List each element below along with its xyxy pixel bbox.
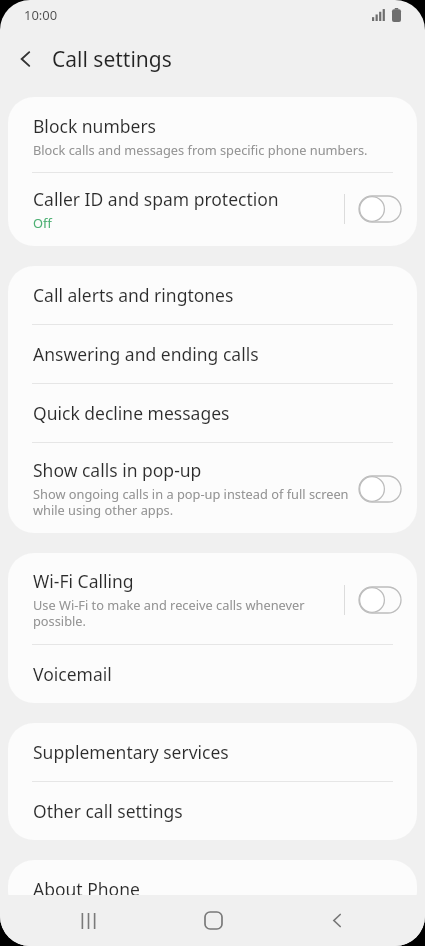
button[interactable]: Call alerts and ringtones — [8, 266, 417, 324]
button[interactable]: Answering and ending calls — [8, 325, 417, 383]
staticText: Caller ID and spam protection — [33, 187, 279, 211]
button[interactable]: Block numbers — [8, 97, 417, 172]
staticText: Block calls and messages from specific p… — [33, 141, 368, 158]
staticText: Call settings — [52, 45, 172, 74]
staticText: Wi-Fi Calling — [33, 569, 134, 593]
button[interactable]: Wi-Fi Calling — [8, 553, 417, 644]
button[interactable]: Back — [301, 895, 373, 946]
button[interactable]: About Phone — [8, 860, 417, 918]
staticText: Off — [33, 214, 52, 231]
button[interactable]: Caller ID and spam protection — [8, 173, 417, 246]
staticText: Voicemail — [33, 662, 112, 686]
button[interactable]: Home — [177, 895, 249, 946]
button[interactable]: Recent apps — [52, 895, 124, 946]
button[interactable]: Voicemail — [8, 645, 417, 703]
staticText: Quick decline messages — [33, 401, 230, 425]
staticText: Supplementary services — [33, 740, 229, 764]
button[interactable]: Supplementary services — [8, 723, 417, 781]
staticText: Block numbers — [33, 114, 157, 138]
button[interactable]: Show calls in pop-up — [8, 443, 417, 533]
staticText: Call alerts and ringtones — [33, 283, 234, 307]
staticText: Show calls in pop-up — [33, 458, 202, 482]
button[interactable]: Toggle Caller ID and spam protection — [359, 196, 401, 222]
button[interactable]: Other call settings — [8, 782, 417, 840]
staticText: 10:00 — [24, 6, 58, 24]
button[interactable]: Back — [0, 33, 52, 85]
staticText: Answering and ending calls — [33, 342, 259, 366]
staticText: Show ongoing calls in a pop-up instead o… — [33, 485, 359, 519]
staticText: Use Wi-Fi to make and receive calls when… — [33, 596, 344, 630]
staticText: Other call settings — [33, 799, 183, 823]
button[interactable]: Toggle Show calls in pop-up — [359, 476, 401, 502]
button[interactable]: Quick decline messages — [8, 384, 417, 442]
button[interactable]: Toggle Wi-Fi Calling — [359, 587, 401, 613]
staticText: About Phone — [33, 877, 140, 901]
